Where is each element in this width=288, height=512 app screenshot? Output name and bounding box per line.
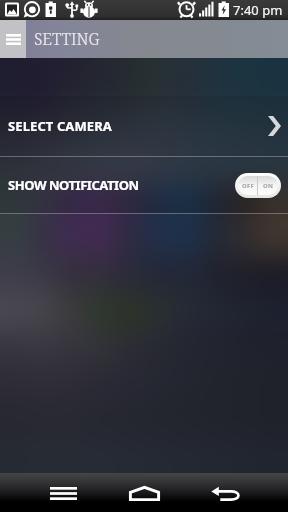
button[interactable]: SELECT CAMERA bbox=[0, 96, 288, 156]
button[interactable]: Home bbox=[104, 473, 185, 512]
button[interactable]: Recent apps bbox=[22, 473, 104, 512]
button[interactable]: Back bbox=[185, 473, 266, 512]
staticText: 7:40 pm bbox=[233, 1, 283, 19]
button[interactable]: Show notification toggle bbox=[235, 173, 281, 198]
staticText: SELECT CAMERA bbox=[8, 117, 112, 135]
button[interactable]: Open navigation menu bbox=[0, 20, 26, 58]
staticText: ON bbox=[263, 182, 274, 190]
staticText: SHOW NOTIFICATION bbox=[8, 176, 139, 194]
button[interactable]: SHOW NOTIFICATION bbox=[0, 157, 288, 213]
staticText: OFF bbox=[242, 182, 254, 190]
staticText: SETTING bbox=[34, 28, 100, 50]
